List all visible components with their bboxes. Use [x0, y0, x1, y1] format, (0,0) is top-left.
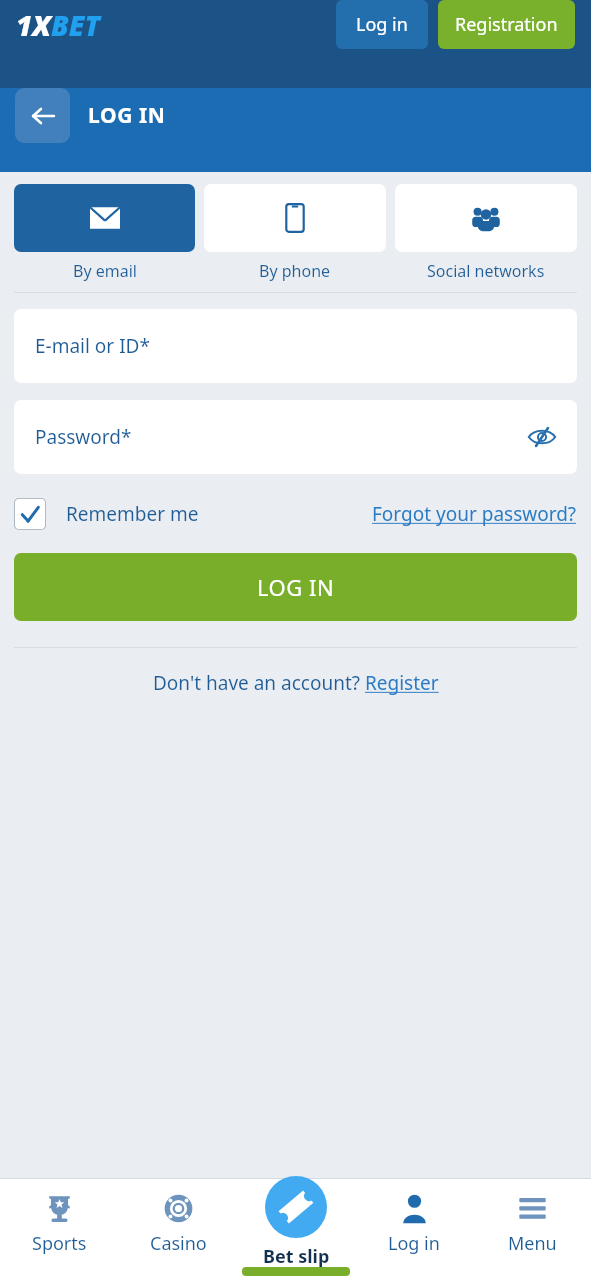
button[interactable]: Log in [355, 1179, 473, 1256]
staticText: 1X [16, 6, 51, 44]
staticText: By email [73, 260, 137, 282]
button[interactable]: Bet slip [237, 1179, 355, 1269]
staticText: Forgot your password? [372, 501, 577, 527]
staticText: Don't have an account? [153, 670, 365, 696]
staticText: Social networks [427, 260, 545, 282]
button[interactable]: Log in [336, 0, 428, 49]
button[interactable]: Remember me [14, 498, 199, 530]
button[interactable]: By email [14, 184, 195, 282]
button[interactable]: Back [15, 88, 70, 143]
button[interactable]: By phone [204, 184, 386, 282]
button[interactable]: Registration [438, 0, 575, 49]
staticText: Log in [356, 12, 408, 37]
button[interactable]: Casino [119, 1179, 237, 1256]
button[interactable]: LOG IN [14, 553, 577, 621]
button[interactable]: Forgot your password? [372, 501, 577, 527]
staticText: Casino [150, 1231, 207, 1256]
button[interactable]: Menu [473, 1179, 591, 1256]
staticText: Register [365, 670, 439, 696]
button[interactable]: Social networks [395, 184, 577, 282]
button[interactable]: Register [365, 670, 439, 696]
staticText: E-mail or ID* [35, 333, 150, 359]
staticText: BET [51, 6, 100, 44]
button[interactable]: Sports [0, 1179, 119, 1256]
staticText: Registration [455, 12, 558, 37]
staticText: LOG IN [88, 101, 166, 130]
staticText: Log in [388, 1231, 440, 1256]
button[interactable]: E-mail or ID* [14, 309, 577, 383]
button[interactable]: Show password [525, 420, 559, 454]
button[interactable]: Password* [14, 400, 577, 474]
staticText: Remember me [66, 501, 199, 527]
staticText: Menu [508, 1231, 557, 1256]
staticText: Password* [35, 424, 132, 450]
staticText: Sports [32, 1231, 87, 1256]
staticText: LOG IN [257, 572, 335, 602]
staticText: By phone [259, 260, 331, 282]
staticText: Bet slip [263, 1244, 330, 1269]
